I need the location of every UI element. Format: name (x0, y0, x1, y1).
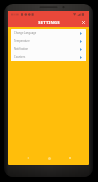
button[interactable]: Counters (11, 53, 86, 61)
button[interactable]: Close (80, 19, 87, 26)
button[interactable]: Recents (66, 154, 74, 162)
button[interactable]: Change Language (11, 29, 86, 37)
button[interactable]: Temperature (11, 37, 86, 45)
staticText: Notification (14, 47, 29, 51)
staticText: Temperature (14, 39, 30, 43)
staticText: Counters (14, 55, 26, 59)
button[interactable]: Home (45, 154, 53, 162)
button[interactable]: Back (24, 154, 32, 162)
staticText: Change Language (14, 31, 37, 35)
staticText: SETTINGS (38, 20, 60, 26)
button[interactable]: Notification (11, 45, 86, 53)
